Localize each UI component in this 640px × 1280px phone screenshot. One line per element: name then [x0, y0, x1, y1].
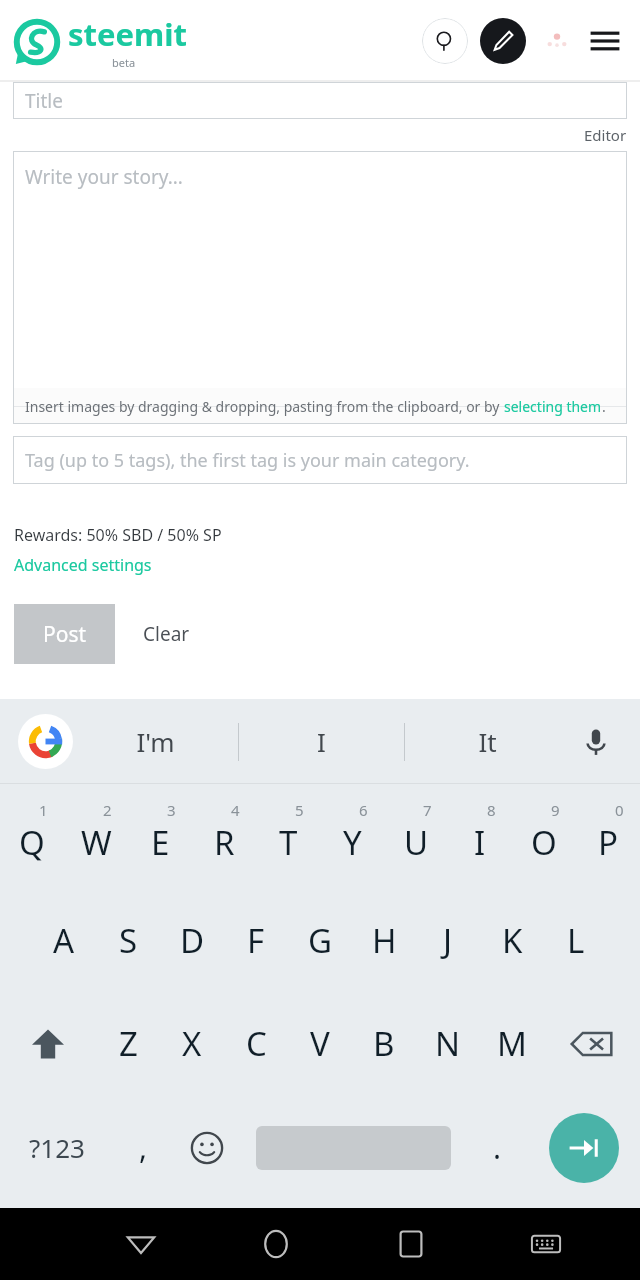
- button[interactable]: 5: [256, 784, 320, 889]
- staticText: L: [567, 918, 585, 963]
- staticText: Rewards: 50% SBD / 50% SP: [14, 524, 222, 546]
- staticText: F: [247, 918, 265, 963]
- staticText: 5: [295, 800, 304, 820]
- staticText: Tag (up to 5 tags), the first tag is you…: [25, 448, 470, 473]
- button[interactable]: C: [224, 992, 288, 1095]
- staticText: 4: [231, 800, 240, 820]
- staticText: 3: [167, 800, 176, 820]
- button[interactable]: Write your story...: [13, 151, 627, 388]
- staticText: O: [531, 820, 557, 865]
- button[interactable]: .: [467, 1095, 527, 1200]
- button[interactable]: Advanced settings: [14, 554, 152, 576]
- staticText: R: [214, 820, 235, 865]
- button[interactable]: K: [480, 889, 544, 992]
- staticText: J: [443, 918, 453, 963]
- button[interactable]: Back: [73, 1208, 208, 1280]
- button[interactable]: 6: [320, 784, 384, 889]
- button[interactable]: Backspace: [544, 992, 640, 1095]
- staticText: 8: [487, 800, 496, 820]
- button[interactable]: ?123: [0, 1095, 113, 1200]
- button[interactable]: selecting them: [504, 397, 602, 416]
- staticText: Clear: [143, 621, 190, 647]
- button[interactable]: Google: [18, 714, 73, 769]
- button[interactable]: 2: [64, 784, 128, 889]
- staticText: H: [372, 918, 397, 963]
- button[interactable]: Space: [240, 1095, 467, 1200]
- staticText: P: [598, 820, 618, 865]
- button[interactable]: 3: [128, 784, 192, 889]
- staticText: I'm: [136, 724, 175, 759]
- staticText: Q: [19, 820, 45, 865]
- staticText: I: [317, 724, 326, 759]
- button[interactable]: G: [288, 889, 352, 992]
- button[interactable]: 0: [576, 784, 640, 889]
- staticText: A: [53, 918, 75, 963]
- button[interactable]: 7: [384, 784, 448, 889]
- button[interactable]: 8: [448, 784, 512, 889]
- button[interactable]: ,: [113, 1095, 173, 1200]
- staticText: D: [180, 918, 205, 963]
- button[interactable]: Menu: [584, 20, 626, 62]
- staticText: W: [81, 820, 112, 865]
- staticText: T: [279, 820, 298, 865]
- staticText: M: [497, 1021, 527, 1066]
- staticText: .: [493, 1127, 502, 1168]
- staticText: .: [602, 397, 606, 416]
- staticText: 1: [39, 800, 48, 820]
- button[interactable]: D: [160, 889, 224, 992]
- button[interactable]: Hide keyboard: [478, 1208, 613, 1280]
- staticText: X: [182, 1021, 202, 1066]
- staticText: steemit: [68, 13, 187, 55]
- button[interactable]: B: [352, 992, 416, 1095]
- button[interactable]: Title: [13, 82, 627, 119]
- button[interactable]: Shift: [0, 992, 96, 1095]
- button[interactable]: Editor: [584, 125, 627, 145]
- staticText: Insert images by dragging & dropping, pa…: [25, 397, 504, 416]
- staticText: Title: [25, 88, 63, 114]
- button[interactable]: 1: [0, 784, 64, 889]
- button[interactable]: J: [416, 889, 480, 992]
- button[interactable]: It: [405, 699, 570, 784]
- button[interactable]: V: [288, 992, 352, 1095]
- staticText: V: [310, 1021, 330, 1066]
- staticText: Post: [43, 620, 87, 649]
- button[interactable]: Post: [14, 604, 115, 664]
- staticText: 7: [423, 800, 432, 820]
- staticText: 9: [551, 800, 560, 820]
- button[interactable]: N: [416, 992, 480, 1095]
- button[interactable]: Home: [208, 1208, 343, 1280]
- button[interactable]: 4: [192, 784, 256, 889]
- button[interactable]: Tag (up to 5 tags), the first tag is you…: [13, 436, 627, 484]
- button[interactable]: Voice input: [570, 716, 622, 768]
- staticText: B: [373, 1021, 395, 1066]
- button[interactable]: I: [239, 699, 404, 784]
- staticText: beta: [112, 55, 136, 70]
- button[interactable]: Recent apps: [343, 1208, 478, 1280]
- button[interactable]: Enter: [527, 1095, 640, 1200]
- staticText: S: [119, 918, 138, 963]
- button[interactable]: A: [32, 889, 96, 992]
- staticText: I: [474, 820, 486, 865]
- button[interactable]: Write post: [480, 18, 526, 64]
- staticText: N: [435, 1021, 461, 1066]
- button[interactable]: F: [224, 889, 288, 992]
- button[interactable]: S: [96, 889, 160, 992]
- button[interactable]: steemit: [14, 13, 187, 70]
- staticText: Y: [343, 820, 362, 865]
- button[interactable]: I'm: [73, 699, 238, 784]
- button[interactable]: Z: [96, 992, 160, 1095]
- staticText: G: [308, 918, 333, 963]
- staticText: Z: [119, 1021, 138, 1066]
- button[interactable]: Clear: [143, 621, 190, 647]
- staticText: Write your story...: [25, 164, 183, 190]
- button[interactable]: Search: [422, 18, 468, 64]
- button[interactable]: 9: [512, 784, 576, 889]
- button[interactable]: M: [480, 992, 544, 1095]
- button[interactable]: X: [160, 992, 224, 1095]
- button[interactable]: H: [352, 889, 416, 992]
- staticText: C: [246, 1021, 267, 1066]
- button[interactable]: Notifications: [540, 24, 574, 58]
- staticText: 6: [359, 800, 368, 820]
- button[interactable]: L: [544, 889, 608, 992]
- button[interactable]: Emoji: [173, 1095, 240, 1200]
